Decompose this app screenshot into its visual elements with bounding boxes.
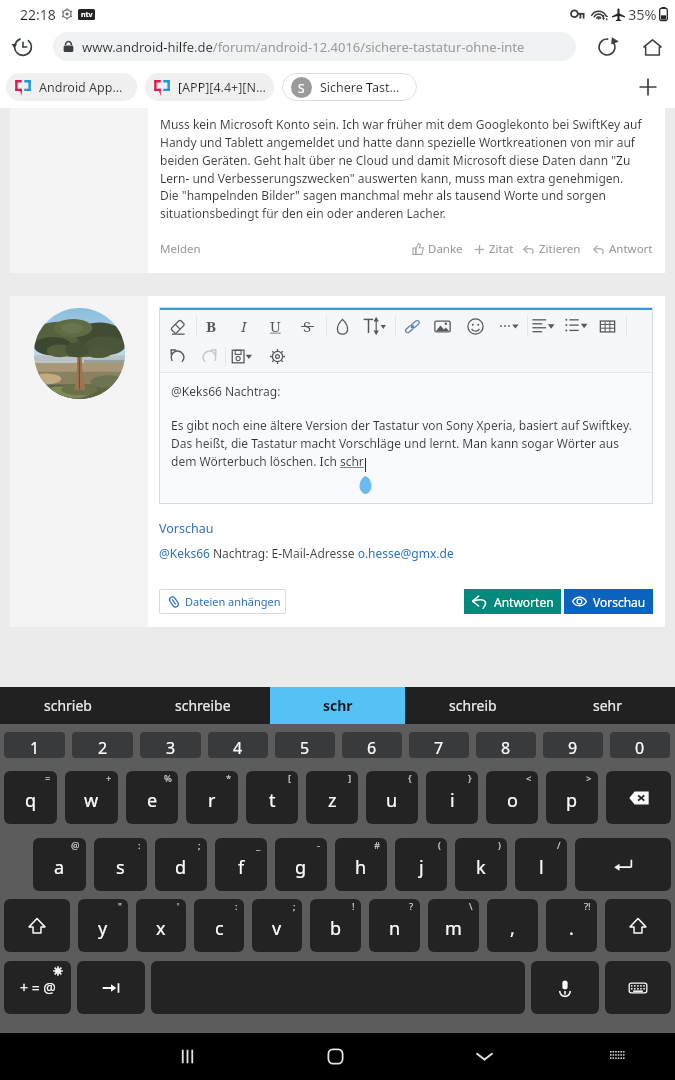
button[interactable]: Zitat <box>474 241 514 257</box>
staticText: # <box>374 839 381 852</box>
button[interactable]: l <box>515 838 567 891</box>
button[interactable]: Format B <box>197 313 225 339</box>
button[interactable]: v <box>252 899 302 952</box>
button[interactable]: 2 <box>72 732 133 758</box>
button[interactable]: Vorschau <box>564 589 653 614</box>
button[interactable]: Danke <box>412 241 463 257</box>
button[interactable]: Format I <box>230 313 258 339</box>
button[interactable]: sehr <box>540 687 675 724</box>
button[interactable]: New tab <box>630 69 666 105</box>
button[interactable]: k <box>455 838 507 891</box>
button[interactable]: Enter <box>575 838 671 891</box>
button[interactable]: u <box>366 771 418 824</box>
button[interactable]: Editor tool <box>461 313 489 339</box>
button[interactable]: Home <box>636 31 668 63</box>
button[interactable]: 4 <box>208 732 268 758</box>
button[interactable]: p <box>546 771 598 824</box>
button[interactable]: Tab <box>77 961 145 1014</box>
button[interactable]: Editor tool <box>529 313 557 339</box>
button[interactable]: Reload <box>591 31 623 63</box>
button[interactable]: Voice input <box>531 961 599 1014</box>
button[interactable]: Dateien anhängen <box>159 589 286 614</box>
button[interactable]: f <box>215 838 267 891</box>
button[interactable]: Editor tool <box>360 313 388 339</box>
button[interactable]: n <box>369 899 420 952</box>
button[interactable]: d <box>155 838 207 891</box>
button[interactable]: Editor tool <box>428 313 456 339</box>
button[interactable]: s <box>94 838 147 891</box>
button[interactable]: , <box>487 899 538 952</box>
button[interactable]: r <box>186 771 238 824</box>
button[interactable]: 3 <box>140 732 201 758</box>
button[interactable]: Editor tool <box>562 313 590 339</box>
button[interactable]: schr <box>270 687 405 724</box>
button[interactable]: Recent apps <box>157 1033 217 1080</box>
button[interactable]: History <box>7 31 39 63</box>
staticText: ; <box>198 839 201 852</box>
button[interactable]: 7 <box>409 732 469 758</box>
button[interactable]: w <box>65 771 118 824</box>
button[interactable]: g <box>275 838 327 891</box>
button[interactable]: 8 <box>476 732 536 758</box>
button[interactable]: Hide keyboard <box>587 1033 647 1080</box>
button[interactable]: y <box>78 899 128 952</box>
button[interactable]: + = @ <box>4 961 71 1014</box>
button[interactable]: Antwort <box>593 241 653 257</box>
button[interactable]: Editor tool <box>163 343 191 369</box>
button[interactable]: m <box>428 899 479 952</box>
button[interactable]: www.android-hilfe.de/forum/android-12.40… <box>53 32 576 61</box>
button[interactable]: x <box>136 899 186 952</box>
button[interactable]: Format S <box>293 313 321 339</box>
button[interactable]: Editor tool <box>398 313 426 339</box>
button[interactable]: e <box>126 771 178 824</box>
button[interactable]: Backspace <box>606 771 671 824</box>
staticText: schrieb <box>44 696 92 715</box>
button[interactable]: schrieb <box>0 687 135 724</box>
button[interactable]: c <box>194 899 244 952</box>
staticText: Muss kein Microsoft Konto sein. Ich war … <box>160 116 653 187</box>
button[interactable]: Editor tool <box>495 313 523 339</box>
staticText: sehr <box>593 696 623 715</box>
button[interactable]: h <box>335 838 387 891</box>
button[interactable]: q <box>4 771 57 824</box>
button[interactable]: i <box>426 771 478 824</box>
button[interactable]: Keyboard layout <box>605 961 671 1014</box>
button[interactable]: 5 <box>275 732 335 758</box>
staticText: * <box>226 772 232 785</box>
button[interactable]: Editor tool <box>227 343 255 369</box>
button[interactable]: Back <box>454 1033 514 1080</box>
button[interactable]: Editor tool <box>593 313 621 339</box>
button[interactable]: 9 <box>543 732 603 758</box>
button[interactable]: Editor tool <box>195 343 223 369</box>
button[interactable]: a <box>33 838 86 891</box>
button[interactable]: Shift <box>605 899 671 952</box>
button[interactable]: Editor tool <box>163 313 191 339</box>
button[interactable]: Zitieren <box>523 241 581 257</box>
button[interactable]: [APP][4.4+][N… <box>145 73 274 101</box>
button[interactable]: t <box>246 771 298 824</box>
button[interactable]: Editor tool <box>263 343 291 369</box>
button[interactable]: j <box>395 838 447 891</box>
button[interactable]: S <box>282 73 417 101</box>
button[interactable]: 1 <box>4 732 65 758</box>
button[interactable]: schreib <box>405 687 540 724</box>
button[interactable]: Editor tool <box>328 313 356 339</box>
staticText: @Keks66 Nachtrag: <box>171 383 281 399</box>
button[interactable]: Home <box>305 1033 365 1080</box>
button[interactable]: o <box>486 771 538 824</box>
button[interactable]: Melden <box>160 241 201 257</box>
button[interactable]: 0 <box>610 732 670 758</box>
button[interactable]: schreibe <box>135 687 270 724</box>
button[interactable]: b <box>310 899 361 952</box>
staticText: ) <box>498 839 501 852</box>
button[interactable]: Shift <box>4 899 70 952</box>
button[interactable]: Vorschau <box>159 520 214 537</box>
button[interactable]: . <box>546 899 597 952</box>
button[interactable]: 6 <box>342 732 402 758</box>
button[interactable]: z <box>306 771 358 824</box>
button[interactable]: Antworten <box>464 589 561 614</box>
button[interactable]: Format U <box>261 313 289 339</box>
button[interactable]: Android App… <box>6 73 137 101</box>
staticText: y <box>98 916 108 941</box>
